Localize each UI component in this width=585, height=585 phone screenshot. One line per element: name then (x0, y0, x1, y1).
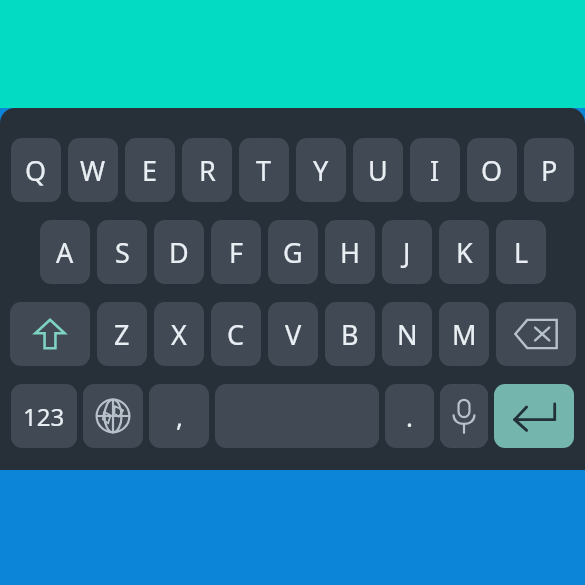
button[interactable]: Z (97, 302, 147, 366)
staticText: 123 (23, 400, 65, 433)
staticText: R (199, 152, 216, 189)
button[interactable]: X (154, 302, 204, 366)
staticText: G (283, 234, 303, 271)
button[interactable]: G (268, 220, 318, 284)
staticText: , (176, 399, 183, 434)
button[interactable]: , (149, 384, 209, 448)
button[interactable]: H (325, 220, 375, 284)
staticText: O (481, 152, 503, 189)
button[interactable]: L (496, 220, 546, 284)
button[interactable]: F (211, 220, 261, 284)
button[interactable]: Enter (494, 384, 574, 448)
staticText: Q (25, 152, 47, 189)
staticText: S (115, 234, 130, 271)
button[interactable]: Q (11, 138, 61, 202)
staticText: M (452, 316, 477, 353)
staticText: E (142, 152, 158, 189)
staticText: . (406, 399, 413, 434)
button[interactable]: Shift (10, 302, 90, 366)
button[interactable]: T (239, 138, 289, 202)
button[interactable]: Voice input (440, 384, 488, 448)
staticText: Z (114, 316, 130, 353)
staticText: D (169, 234, 189, 271)
staticText: I (430, 152, 440, 189)
button[interactable]: P (524, 138, 574, 202)
button[interactable]: O (467, 138, 517, 202)
button[interactable]: A (40, 220, 90, 284)
button[interactable]: Change language (83, 384, 143, 448)
staticText: B (341, 316, 359, 353)
staticText: A (56, 234, 74, 271)
staticText: X (171, 316, 187, 353)
button[interactable]: R (182, 138, 232, 202)
button[interactable]: J (382, 220, 432, 284)
staticText: J (403, 234, 411, 271)
button[interactable]: V (268, 302, 318, 366)
staticText: H (340, 234, 361, 271)
button[interactable]: B (325, 302, 375, 366)
button[interactable]: I (410, 138, 460, 202)
staticText: F (229, 234, 244, 271)
staticText: L (514, 234, 529, 271)
button[interactable]: Y (296, 138, 346, 202)
staticText: Y (313, 152, 329, 189)
button[interactable]: W (68, 138, 118, 202)
staticText: W (80, 152, 106, 189)
button[interactable]: 123 (11, 384, 77, 448)
button[interactable]: . (385, 384, 434, 448)
staticText: V (285, 316, 302, 353)
button[interactable]: Backspace (496, 302, 576, 366)
staticText: N (397, 316, 418, 353)
staticText: K (456, 234, 473, 271)
button[interactable]: K (439, 220, 489, 284)
button[interactable]: C (211, 302, 261, 366)
button[interactable]: D (154, 220, 204, 284)
staticText: U (368, 152, 388, 189)
button[interactable]: E (125, 138, 175, 202)
staticText: C (227, 316, 245, 353)
button[interactable]: M (439, 302, 489, 366)
staticText: T (256, 152, 272, 189)
staticText: P (541, 152, 558, 189)
button[interactable]: U (353, 138, 403, 202)
button[interactable]: S (97, 220, 147, 284)
button[interactable]: N (382, 302, 432, 366)
